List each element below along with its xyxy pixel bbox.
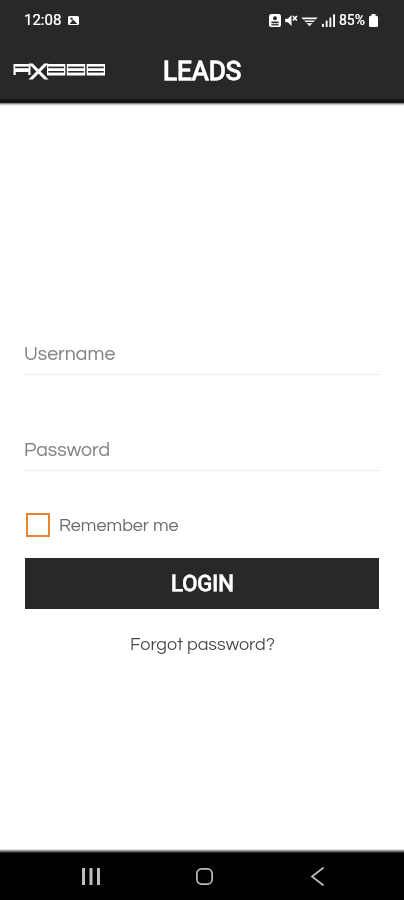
button[interactable]: Username [24,346,380,375]
staticText: 85% [339,12,365,28]
button[interactable]: Recent apps [65,853,117,900]
staticText: Username [24,344,116,364]
staticText: Password [24,440,111,460]
button[interactable]: LOGIN [25,558,379,609]
button[interactable]: Home [178,853,230,900]
button[interactable]: Password [24,442,380,471]
button[interactable]: Forgot password? [126,633,279,656]
button[interactable]: Remember me [26,513,179,537]
staticText: 12:08 [24,11,62,29]
other: AXESS [13,62,105,81]
staticText: Remember me [59,516,179,535]
staticText: LOGIN [171,571,234,597]
staticText: LEADS [163,56,242,86]
button[interactable]: Back [291,853,343,900]
